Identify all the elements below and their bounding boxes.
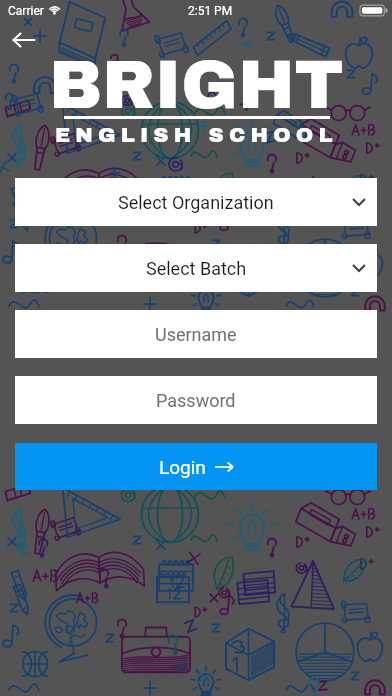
button[interactable]: Login (15, 443, 377, 490)
button[interactable]: Username (15, 310, 377, 358)
staticText: ENGLISH SCHOOL (55, 124, 338, 147)
button[interactable]: Password (15, 376, 377, 424)
staticText: Carrier (8, 4, 44, 18)
staticText: Password (156, 390, 236, 411)
staticText: Select Batch (146, 258, 247, 279)
staticText: BRIGHT (49, 48, 344, 122)
staticText: Login (159, 456, 206, 478)
button[interactable]: Back (4, 20, 44, 60)
button[interactable]: Select Organization (15, 178, 377, 226)
staticText: 2:51 PM (188, 4, 233, 18)
staticText: Username (155, 324, 237, 345)
staticText: Select Organization (118, 192, 274, 213)
button[interactable]: Select Batch (15, 244, 377, 292)
